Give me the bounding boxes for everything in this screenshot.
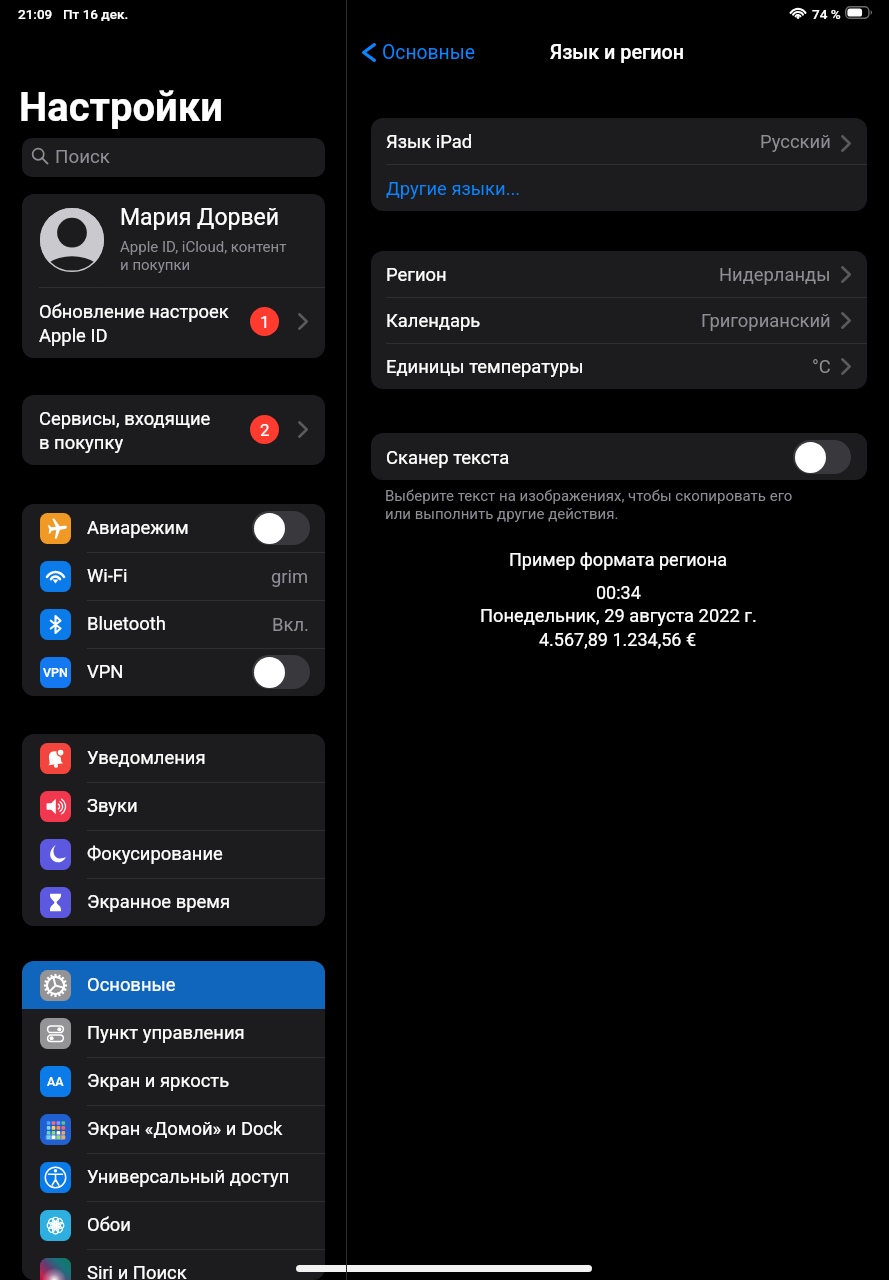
button[interactable]: Bluetooth [22,600,325,648]
staticText: Выберите текст на изображениях, чтобы ск… [385,487,793,505]
staticText: Регион [386,264,447,286]
button[interactable]: Переключатель [793,440,851,474]
staticText: VPN [43,665,68,680]
staticText: Сканер текста [386,447,510,469]
button[interactable]: Сканер текста [371,433,867,480]
button[interactable]: Язык iPad [371,118,867,164]
staticText: Другие языки... [386,178,521,200]
staticText: Siri и Поиск [87,1262,187,1280]
staticText: Звуки [87,795,138,817]
button[interactable]: Основные [358,38,483,66]
staticText: Русский [760,131,831,153]
staticText: °C [812,356,831,378]
staticText: Основные [87,974,176,996]
staticText: Apple ID [39,325,108,347]
staticText: Единицы температуры [386,356,584,378]
staticText: Сервисы, входящие [39,408,211,430]
staticText: VPN [87,661,124,683]
staticText: Григорианский [701,310,831,332]
staticText: 74 % [812,6,841,22]
staticText: в покупку [39,432,124,454]
button[interactable]: Поиск [22,138,325,177]
button[interactable]: Фокусирование [22,830,325,878]
staticText: Экран «Домой» и Dock [87,1118,283,1140]
staticText: Основные [382,41,475,64]
staticText: 00:34 [596,582,641,603]
button[interactable]: Переключатель [252,511,310,545]
button[interactable]: Мария Дорвей [22,194,325,288]
staticText: Мария Дорвей [120,204,280,231]
staticText: Универсальный доступ [87,1166,290,1188]
staticText: Календарь [386,310,481,332]
button[interactable]: Авиарежим [22,504,325,552]
staticText: Apple ID, iCloud, контент [120,238,287,256]
staticText: Авиарежим [87,517,189,539]
button[interactable]: Календарь [371,297,867,343]
button[interactable]: Основные [22,961,325,1009]
staticText: 2 [260,420,270,440]
button[interactable]: Единицы температуры [371,343,867,389]
staticText: Wi-Fi [87,565,128,587]
staticText: Язык iPad [386,131,473,153]
button[interactable]: Обновление настроек [22,288,325,357]
staticText: 21:09 [18,6,53,22]
staticText: Вкл. [272,614,309,636]
button[interactable]: Регион [371,251,867,297]
staticText: 1 [260,312,270,332]
button[interactable]: Экранное время [22,878,325,926]
staticText: Фокусирование [87,843,223,865]
button[interactable]: Другие языки... [371,165,867,211]
staticText: Обновление настроек [39,301,229,323]
staticText: Уведомления [87,747,206,769]
staticText: grim [271,566,309,588]
staticText: Настройки [19,84,223,131]
button[interactable]: Обои [22,1201,325,1249]
button[interactable]: AA [22,1057,325,1105]
staticText: Bluetooth [87,613,166,635]
button[interactable]: Переключатель [252,655,310,689]
staticText: Понедельник, 29 августа 2022 г. [480,605,757,626]
staticText: Пт 16 дек. [63,6,129,22]
button[interactable]: Универсальный доступ [22,1153,325,1201]
button[interactable]: VPN [22,648,325,696]
staticText: или выполнить другие действия. [385,505,619,523]
staticText: Пункт управления [87,1022,245,1044]
button[interactable]: Сервисы, входящие [22,395,325,465]
staticText: Экранное время [87,891,231,913]
button[interactable]: Siri и Поиск [22,1249,325,1280]
staticText: Поиск [55,146,110,168]
button[interactable]: Уведомления [22,734,325,782]
button[interactable]: Экран «Домой» и Dock [22,1105,325,1153]
staticText: Нидерланды [719,264,831,286]
staticText: 4.567,89 1.234,56 € [539,629,697,650]
staticText: Экран и яркость [87,1070,230,1092]
button[interactable]: Пункт управления [22,1009,325,1057]
staticText: Обои [87,1214,131,1236]
staticText: Язык и регион [550,41,685,64]
staticText: и покупки [120,256,191,274]
staticText: AA [47,1074,64,1089]
staticText: Пример формата региона [509,549,728,570]
button[interactable]: Wi-Fi [22,552,325,600]
button[interactable]: Звуки [22,782,325,830]
